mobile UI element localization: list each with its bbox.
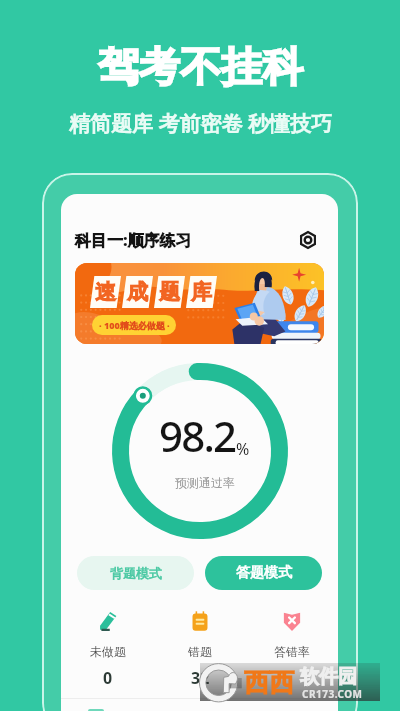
staticText: 速 [95,279,116,305]
staticText: % [236,438,250,460]
button[interactable]: 背题模式 [77,556,194,590]
staticText: 软件园 [300,665,357,689]
staticText: 错题 [188,644,212,659]
staticText: 未做题 [90,644,126,659]
staticText: CR173.COM [302,687,363,701]
staticText: 答题模式 [236,564,292,582]
staticText: 科目一:顺序练习 [75,229,192,251]
staticText: 32 [191,667,210,689]
button[interactable]: 答题模式 [205,556,322,590]
staticText: 答错率 [274,644,310,659]
staticText: 成 [127,279,148,305]
staticText: 背题模式 [110,565,162,581]
staticText: 预测通过率 [175,475,235,490]
staticText: · 100精选必做题 · [99,319,170,331]
button[interactable]: 答错率 [262,608,322,669]
staticText: 题 [159,279,180,305]
staticText: 精简题库 考前密卷 秒懂技巧 [69,109,332,138]
staticText: 库 [191,279,212,305]
staticText: 驾考不挂科 [98,42,303,94]
staticText: 西西 [244,667,294,698]
staticText: 0 [103,667,113,689]
button[interactable]: 错题 [170,608,230,691]
button[interactable]: 速 [75,263,324,344]
button[interactable]: Settings [295,227,321,253]
button[interactable]: 未做题 [78,608,138,691]
staticText: 98.2 [159,407,236,464]
